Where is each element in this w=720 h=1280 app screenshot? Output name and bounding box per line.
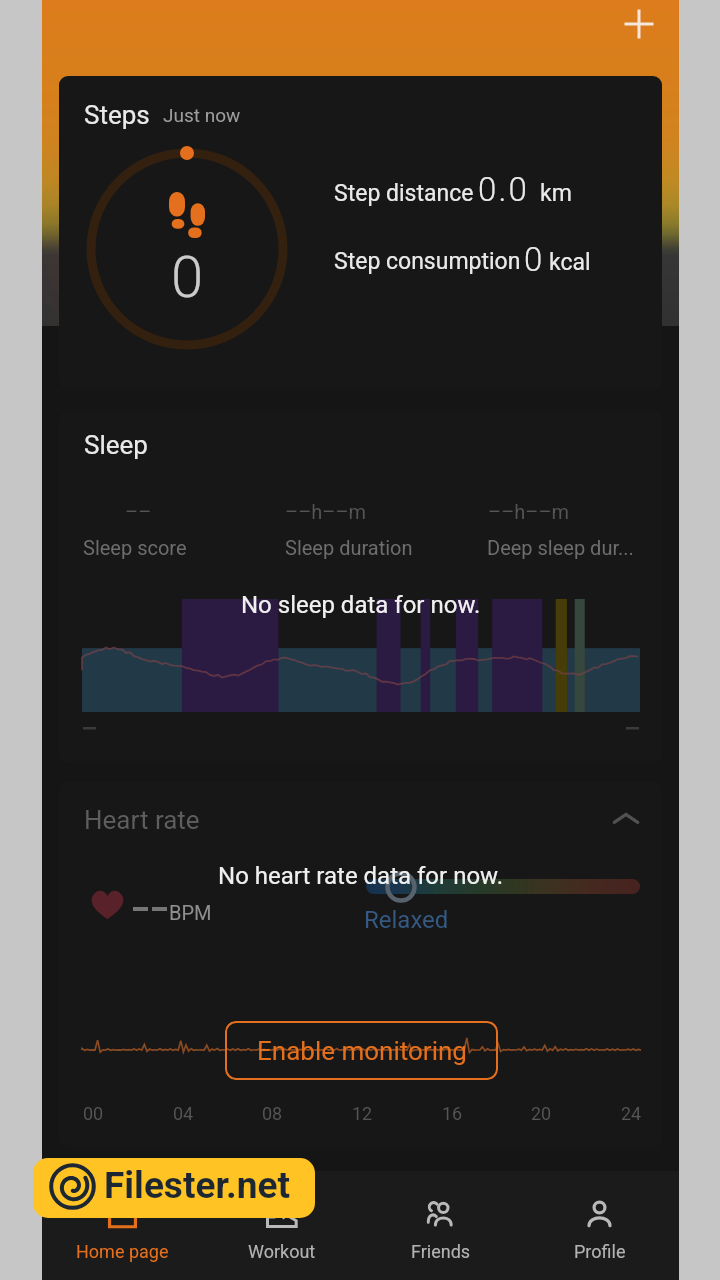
- staticText: Deep sleep dur...: [487, 536, 634, 559]
- staticText: 08: [262, 1103, 283, 1124]
- button[interactable]: Sleep: [59, 411, 662, 763]
- staticText: ––h––m: [285, 500, 367, 523]
- staticText: 04: [173, 1103, 194, 1124]
- staticText: Filester.net: [104, 1164, 291, 1207]
- button[interactable]: Steps: [59, 76, 662, 389]
- staticText: 24: [621, 1103, 642, 1124]
- staticText: No sleep data for now.: [241, 591, 481, 619]
- button[interactable]: Friends: [361, 1171, 520, 1280]
- button[interactable]: Home page: [42, 1171, 202, 1280]
- button[interactable]: Add: [616, 1, 662, 47]
- staticText: Just now: [163, 104, 241, 126]
- staticText: No heart rate data for now.: [218, 862, 503, 890]
- staticText: Sleep score: [83, 536, 187, 559]
- staticText: 00: [83, 1103, 104, 1124]
- button[interactable]: Collapse: [604, 797, 648, 841]
- staticText: Profile: [574, 1241, 626, 1262]
- staticText: km: [540, 180, 572, 207]
- button[interactable]: Heart rate: [59, 782, 662, 1148]
- staticText: 0: [171, 243, 204, 311]
- staticText: Home page: [76, 1241, 169, 1262]
- staticText: Relaxed: [364, 906, 449, 934]
- staticText: 0.0: [478, 170, 530, 209]
- staticText: Workout: [248, 1241, 316, 1262]
- staticText: ––: [125, 500, 152, 523]
- staticText: Sleep: [84, 430, 148, 460]
- staticText: BPM: [169, 901, 212, 924]
- button[interactable]: Enable monitoring: [225, 1021, 498, 1080]
- staticText: Sleep duration: [285, 536, 413, 559]
- button[interactable]: Workout: [202, 1171, 361, 1280]
- staticText: Step distance: [334, 180, 474, 207]
- staticText: kcal: [549, 249, 591, 276]
- staticText: Enable monitoring: [257, 1036, 467, 1066]
- staticText: 0: [524, 240, 545, 279]
- staticText: ––h––m: [488, 500, 570, 523]
- staticText: Friends: [411, 1241, 471, 1262]
- staticText: Step consumption: [334, 248, 521, 275]
- staticText: 20: [531, 1103, 552, 1124]
- staticText: Heart rate: [84, 805, 200, 835]
- staticText: 12: [352, 1103, 373, 1124]
- staticText: 16: [442, 1103, 463, 1124]
- button[interactable]: Profile: [520, 1171, 679, 1280]
- staticText: Steps: [84, 100, 150, 130]
